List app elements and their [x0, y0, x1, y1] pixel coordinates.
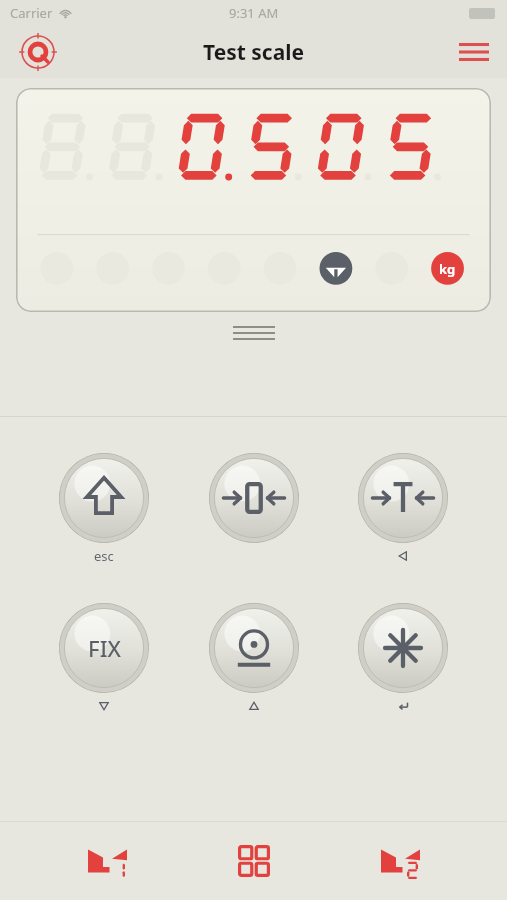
button[interactable]: Zero: [209, 453, 299, 543]
button[interactable]: Escape: [59, 453, 149, 543]
staticText: FIX: [88, 633, 121, 663]
button[interactable]: Menu: [457, 38, 491, 66]
button[interactable]: Function: [358, 603, 448, 693]
button[interactable]: App logo: [18, 32, 58, 72]
button[interactable]: Scale 2: [360, 831, 440, 891]
button[interactable]: Tare: [358, 453, 448, 543]
staticText: esc: [94, 547, 114, 565]
staticText: kg: [439, 260, 456, 278]
button[interactable]: Print: [209, 603, 299, 693]
staticText: 9:31 AM: [229, 4, 279, 22]
staticText: Test scale: [203, 38, 305, 67]
button[interactable]: Fix: [59, 603, 149, 693]
button[interactable]: Scale 1: [67, 831, 147, 891]
button[interactable]: kg: [16, 88, 491, 312]
button[interactable]: Resize display: [0, 312, 507, 354]
staticText: Carrier: [10, 4, 53, 22]
button[interactable]: All scales: [214, 831, 294, 891]
